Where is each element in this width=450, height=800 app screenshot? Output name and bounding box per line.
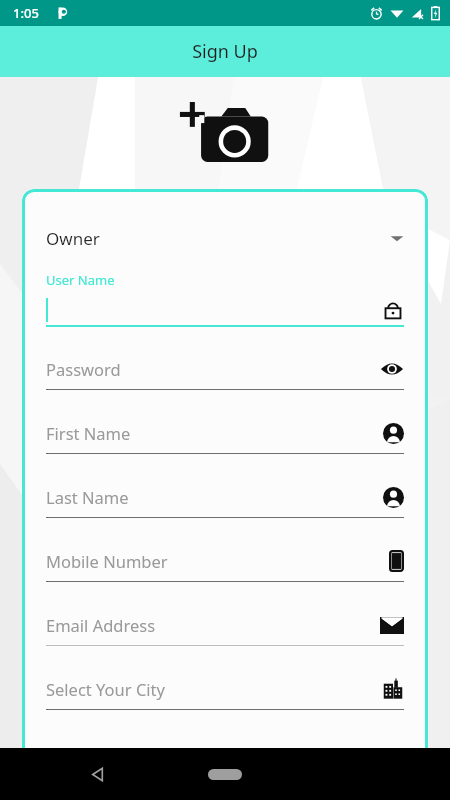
other: Mobile number [389, 550, 404, 572]
button[interactable]: Password [46, 355, 404, 390]
button[interactable]: Mobile Number [46, 547, 404, 582]
button[interactable]: Select Your City [46, 675, 404, 710]
other: Select your city [382, 678, 404, 700]
button[interactable]: Back [80, 757, 114, 791]
button[interactable]: Owner [46, 221, 404, 255]
staticText: First Name [46, 422, 131, 444]
staticText: 1:05 [13, 4, 39, 22]
staticText: Select Your City [46, 678, 165, 700]
button[interactable]: Home [195, 759, 255, 789]
other: Email address [380, 617, 404, 634]
staticText: Sign Up [192, 39, 258, 64]
other: Show password [380, 360, 404, 378]
staticText: Last Name [46, 486, 129, 508]
other: Name [383, 487, 404, 508]
button[interactable]: Email Address [46, 611, 404, 646]
button[interactable]: First Name [46, 419, 404, 454]
staticText: Mobile Number [46, 550, 168, 572]
staticText: Password [46, 358, 121, 380]
staticText: Owner [46, 227, 100, 250]
other: Name [383, 423, 404, 444]
button[interactable]: Last Name [46, 483, 404, 518]
button[interactable]: User Name [46, 271, 404, 327]
other: Password visibility lock [382, 299, 404, 321]
button[interactable]: Add profile photo [179, 95, 271, 167]
staticText: User Name [46, 271, 115, 289]
staticText: Email Address [46, 614, 156, 636]
